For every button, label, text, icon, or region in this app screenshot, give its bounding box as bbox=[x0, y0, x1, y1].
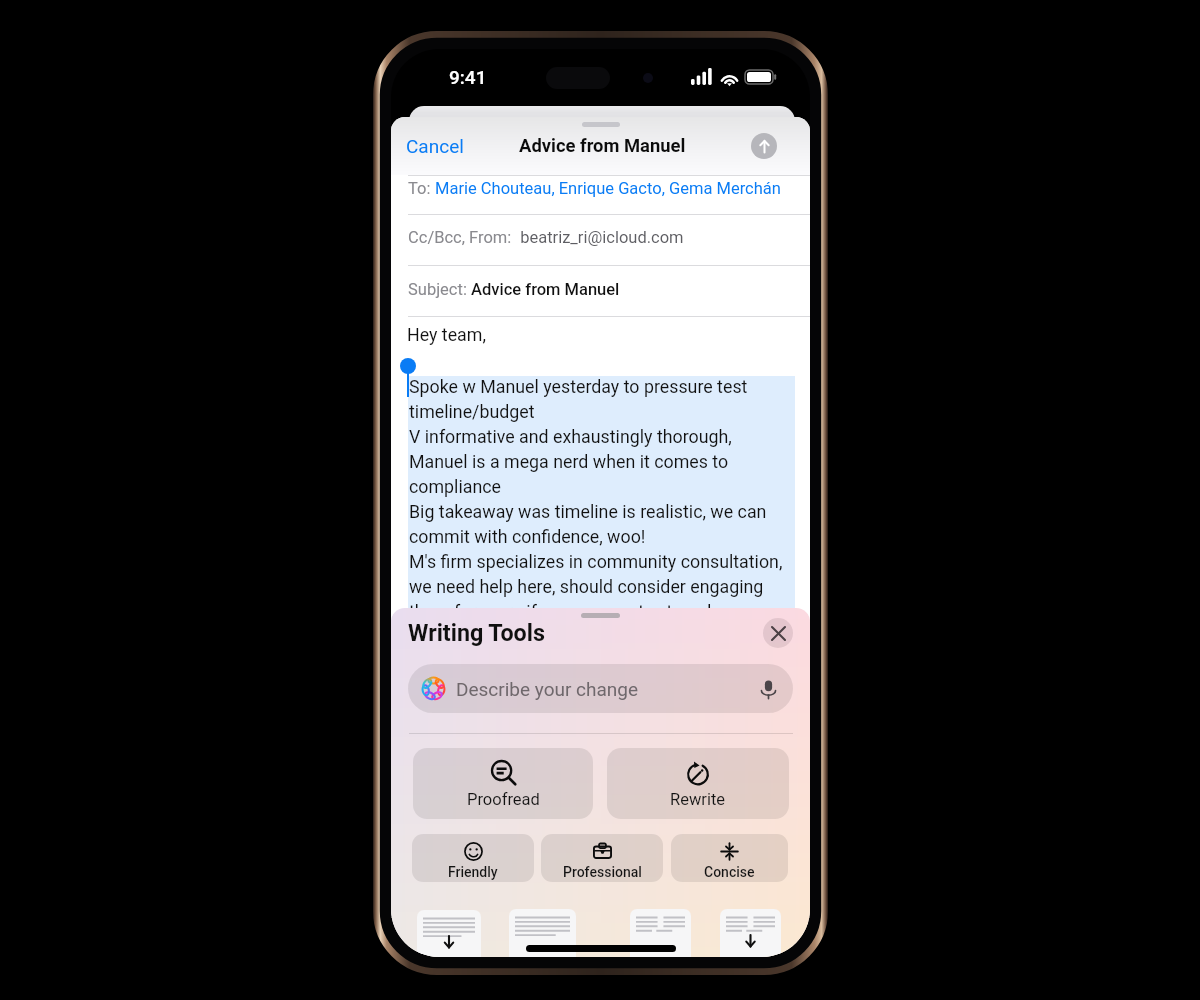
staticText: 9:41 bbox=[449, 66, 487, 88]
button[interactable]: Dictate bbox=[755, 676, 781, 702]
button[interactable]: Professional bbox=[541, 834, 663, 882]
button[interactable]: Rewrite bbox=[607, 748, 789, 819]
staticText: Spoke w Manuel yesterday to pressure tes… bbox=[409, 376, 783, 622]
staticText: Advice from Manuel bbox=[471, 280, 620, 299]
button[interactable] bbox=[720, 909, 781, 957]
button[interactable]: Send bbox=[751, 133, 777, 159]
staticText: Friendly bbox=[448, 864, 498, 880]
staticText: Professional bbox=[563, 864, 642, 880]
button[interactable] bbox=[630, 909, 691, 957]
button[interactable]: Cc/Bcc, From: bbox=[391, 214, 810, 261]
button[interactable]: To: bbox=[391, 175, 810, 202]
staticText: Hey team, bbox=[407, 324, 486, 345]
button[interactable]: Describe your change bbox=[408, 664, 793, 713]
staticText: Concise bbox=[704, 864, 755, 880]
staticText: Advice from Manuel bbox=[519, 135, 686, 157]
staticText: Subject: bbox=[408, 280, 471, 299]
button[interactable]: Concise bbox=[671, 834, 788, 882]
button[interactable] bbox=[509, 909, 576, 957]
staticText: Proofread bbox=[467, 790, 540, 809]
button[interactable]: Friendly bbox=[412, 834, 534, 882]
staticText: Cc/Bcc, From: bbox=[408, 228, 512, 247]
button[interactable] bbox=[417, 910, 481, 957]
staticText: beatriz_ri@icloud.com bbox=[512, 228, 684, 247]
button[interactable]: Close bbox=[763, 618, 793, 648]
button[interactable]: Proofread bbox=[413, 748, 593, 819]
button[interactable]: Subject: bbox=[391, 265, 810, 314]
staticText: To: bbox=[408, 179, 435, 198]
staticText: Cancel bbox=[406, 135, 464, 157]
staticText: Writing Tools bbox=[408, 619, 545, 646]
staticText: Marie Chouteau, Enrique Gacto, Gema Merc… bbox=[435, 179, 781, 198]
staticText: Rewrite bbox=[670, 790, 726, 809]
staticText: Describe your change bbox=[456, 678, 639, 700]
button[interactable]: Cancel bbox=[392, 131, 478, 161]
